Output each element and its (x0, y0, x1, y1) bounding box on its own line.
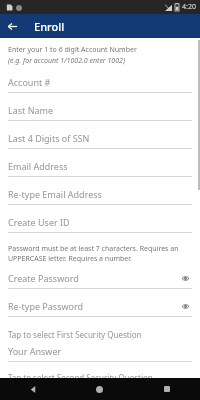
staticText: Re-type Password (8, 300, 84, 312)
staticText: 4:20 (182, 2, 196, 12)
button[interactable]: Back (0, 14, 24, 38)
button[interactable]: Tap to select First Security Question (8, 327, 192, 341)
staticText: Tap to select First Security Question (8, 329, 142, 340)
button[interactable]: Email Address (8, 156, 192, 184)
button[interactable]: Last Name (8, 100, 192, 128)
staticText: Account # (8, 76, 51, 88)
staticText: Create Password (8, 272, 79, 284)
staticText: Last Name (8, 104, 54, 116)
staticText: Re-type Email Address (8, 188, 102, 200)
staticText: Your Answer (8, 345, 62, 357)
button[interactable]: Show password (178, 299, 192, 313)
button[interactable]: Tap to select Second Security Question (8, 372, 192, 378)
button[interactable]: Create User ID (8, 212, 192, 240)
staticText: Email Address (8, 160, 68, 172)
button[interactable]: Last 4 Digits of SSN (8, 128, 192, 156)
button[interactable]: Create Password (8, 268, 192, 296)
button[interactable]: Back (0, 378, 66, 400)
button[interactable]: Show password (178, 271, 192, 285)
button[interactable]: Re-type Email Address (8, 184, 192, 212)
staticText: Tap to select Second Security Question (8, 372, 153, 378)
staticText: Enter your 1 to 6 digit Account Number (8, 45, 137, 55)
staticText: Enroll (34, 19, 65, 34)
button[interactable]: Re-type Password (8, 296, 192, 324)
staticText: Last 4 Digits of SSN (8, 132, 90, 144)
button[interactable]: Recent apps (133, 378, 200, 400)
staticText: Password must be at least 7 characters. … (8, 244, 179, 254)
staticText: Create User ID (8, 216, 70, 228)
button[interactable]: Home (66, 378, 133, 400)
button[interactable]: Your Answer (8, 341, 192, 369)
button[interactable]: Account # (8, 72, 192, 100)
staticText: (e.g. for account 1/1002.0 enter 1002) (8, 56, 125, 66)
staticText: UPPERCASE letter. Requires a number. (8, 254, 132, 264)
